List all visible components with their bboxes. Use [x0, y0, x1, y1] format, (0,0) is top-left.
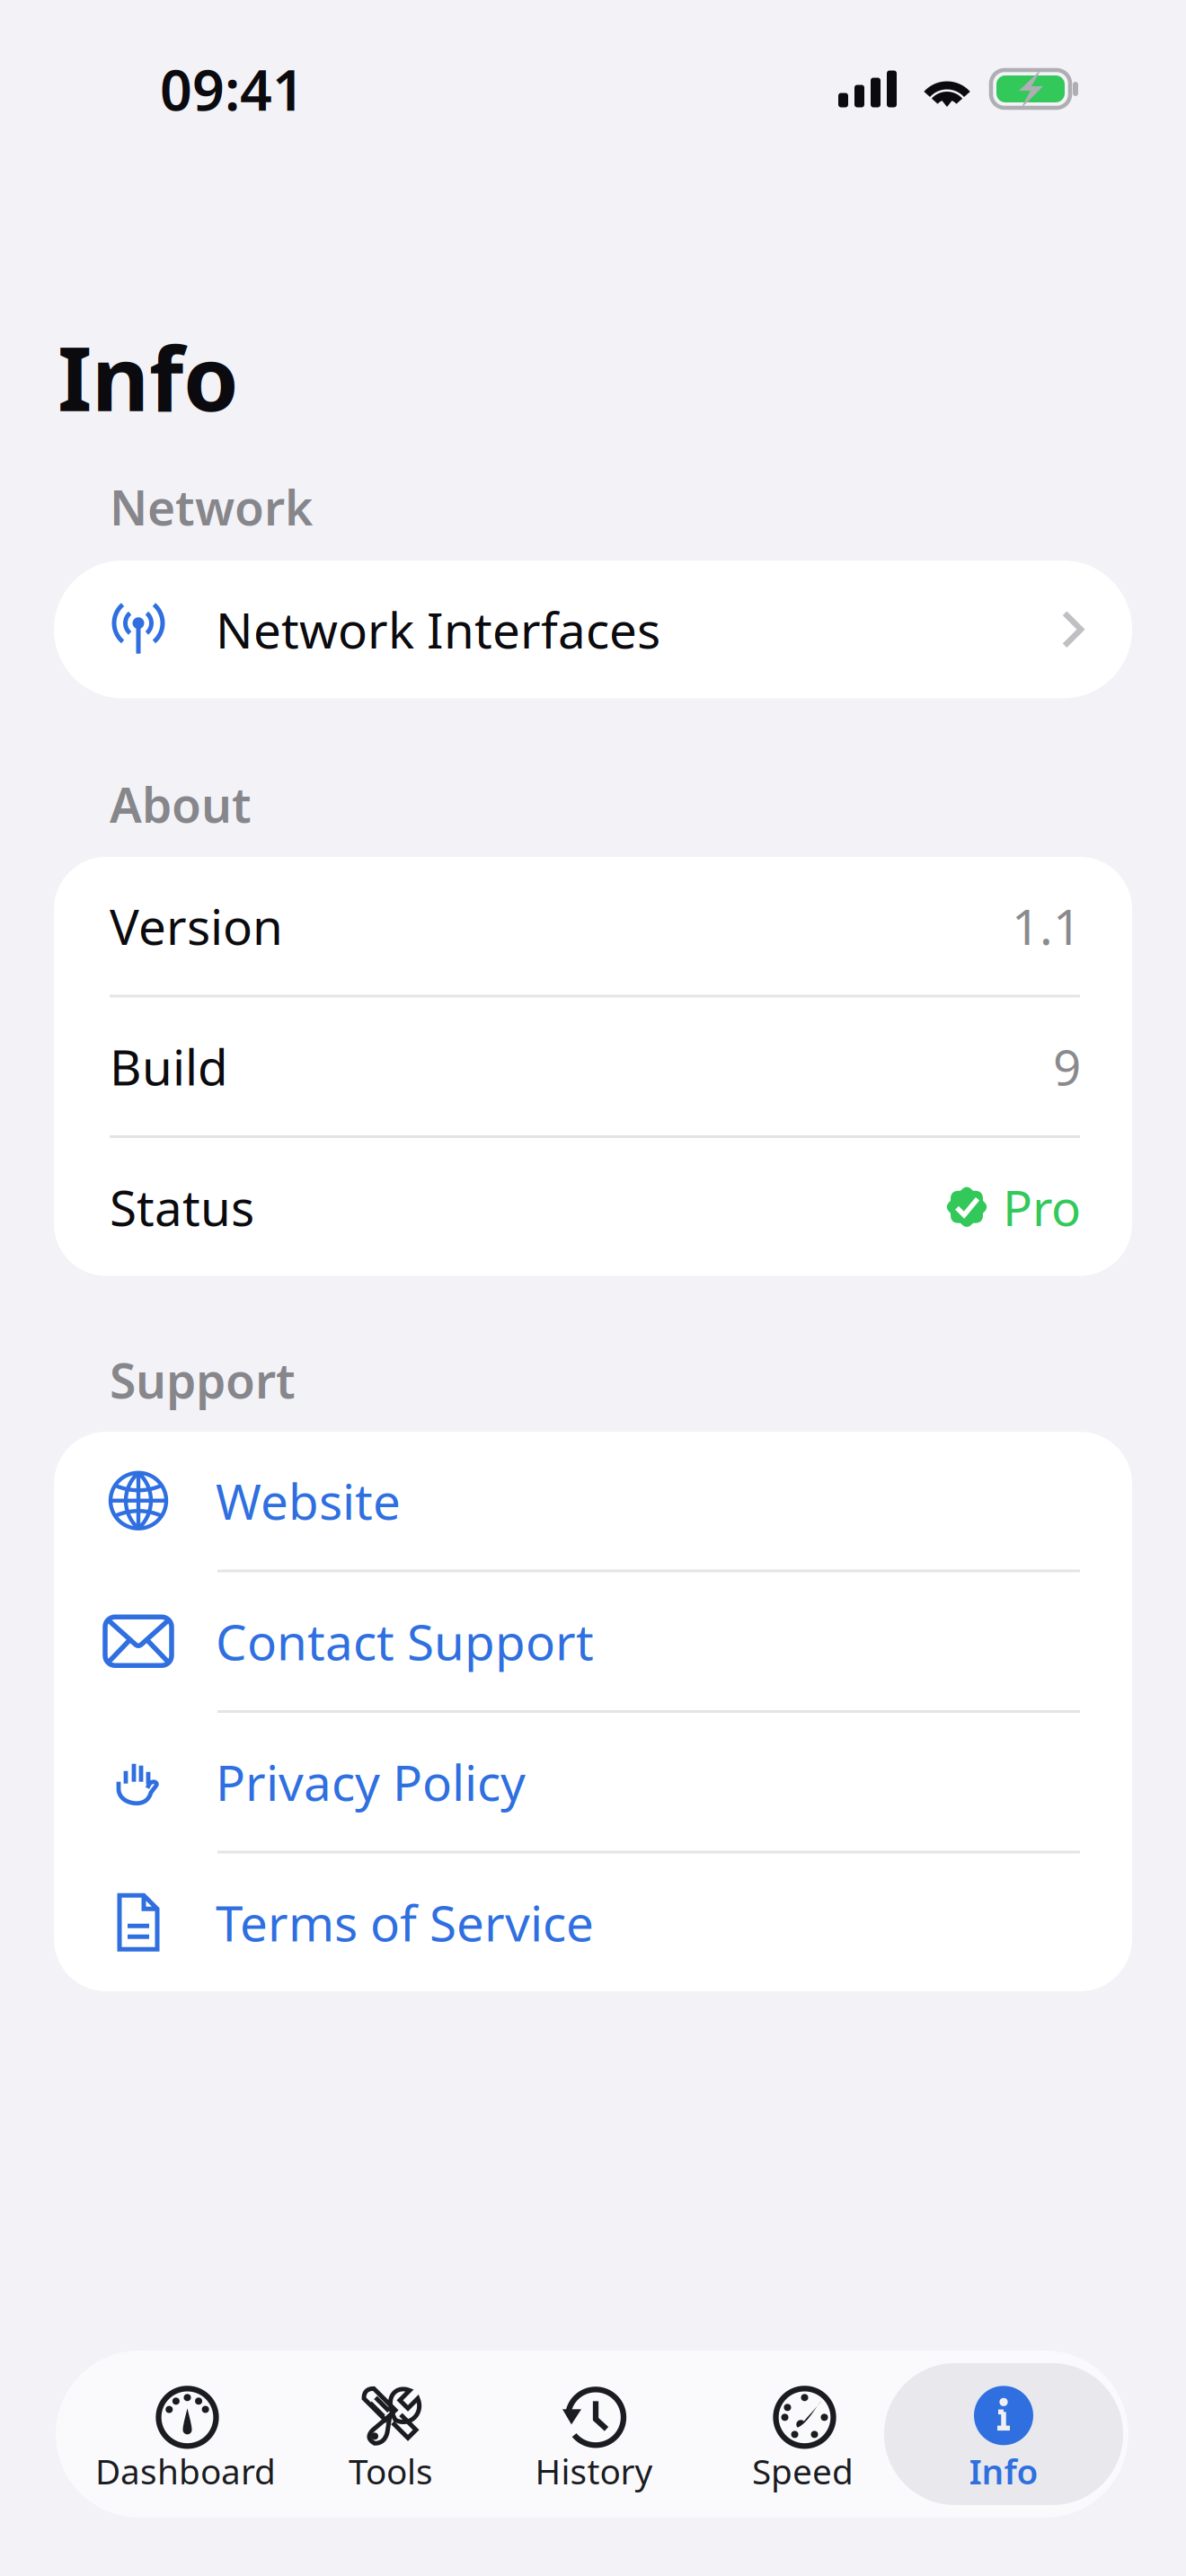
- staticText: 9: [1053, 1034, 1081, 1099]
- staticText: About: [110, 772, 252, 836]
- button[interactable]: Info: [884, 2363, 1123, 2505]
- staticText: Website: [216, 1468, 401, 1533]
- button[interactable]: Contact Support: [54, 1572, 1132, 1710]
- staticText: Network: [110, 475, 313, 539]
- staticText: 1.1: [1012, 893, 1081, 958]
- staticText: History: [535, 2448, 653, 2494]
- button[interactable]: Tools: [315, 2363, 466, 2505]
- button[interactable]: Network Interfaces: [54, 560, 1132, 698]
- button[interactable]: Speed: [721, 2363, 884, 2505]
- staticText: 09:41: [160, 52, 305, 126]
- staticText: Speed: [752, 2448, 854, 2494]
- button[interactable]: Website: [54, 1432, 1132, 1570]
- button[interactable]: Privacy Policy: [54, 1713, 1132, 1851]
- button[interactable]: History: [466, 2363, 721, 2505]
- button[interactable]: Terms of Service: [54, 1853, 1132, 1991]
- staticText: Tools: [349, 2448, 433, 2494]
- staticText: Contact Support: [216, 1609, 594, 1674]
- staticText: Info: [58, 318, 239, 436]
- staticText: Build: [110, 1034, 228, 1099]
- staticText: Info: [969, 2448, 1038, 2494]
- staticText: Status: [110, 1174, 254, 1240]
- staticText: Terms of Service: [216, 1890, 594, 1955]
- staticText: Privacy Policy: [216, 1749, 526, 1814]
- staticText: Version: [110, 893, 283, 958]
- staticText: Pro: [1003, 1174, 1081, 1240]
- button[interactable]: Dashboard: [56, 2363, 315, 2505]
- staticText: Network Interfaces: [216, 597, 660, 662]
- staticText: Dashboard: [95, 2448, 276, 2494]
- staticText: Support: [110, 1348, 296, 1412]
